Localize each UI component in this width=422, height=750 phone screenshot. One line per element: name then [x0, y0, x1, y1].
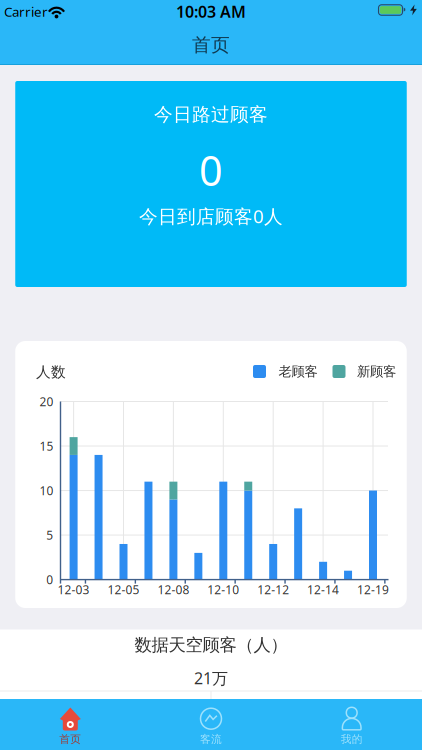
button[interactable]: 首页 — [0, 699, 141, 750]
staticText: 客流 — [200, 733, 222, 746]
staticText: 12-19 — [357, 581, 389, 597]
staticText: 今日到店顾客0人 — [139, 204, 283, 228]
staticText: 12-14 — [307, 581, 339, 597]
button[interactable]: 我的 — [281, 699, 422, 750]
staticText: 老顾客 — [278, 363, 317, 380]
staticText: 首页 — [59, 733, 81, 746]
staticText: 12-10 — [207, 581, 239, 597]
staticText: 数据天空顾客（人） — [134, 634, 287, 656]
staticText: 我的 — [341, 733, 363, 746]
staticText: 15 — [39, 438, 53, 454]
staticText: 20 — [39, 393, 53, 409]
staticText: 今日路过顾客 — [154, 103, 268, 126]
staticText: 12-05 — [107, 581, 139, 597]
button[interactable]: 客流 — [141, 699, 281, 750]
staticText: Carrier — [4, 3, 48, 20]
staticText: 21万 — [194, 667, 228, 689]
staticText: 人数 — [36, 363, 66, 381]
staticText: 新顾客 — [357, 363, 396, 380]
staticText: 0 — [46, 572, 53, 587]
staticText: 0 — [199, 143, 223, 197]
staticText: 10 — [39, 483, 53, 498]
staticText: 12-08 — [157, 581, 189, 597]
staticText: 12-03 — [58, 581, 90, 597]
staticText: 首页 — [192, 33, 230, 56]
staticText: 10:03 AM — [176, 1, 246, 22]
staticText: 12-12 — [257, 581, 289, 597]
staticText: 5 — [46, 527, 53, 543]
